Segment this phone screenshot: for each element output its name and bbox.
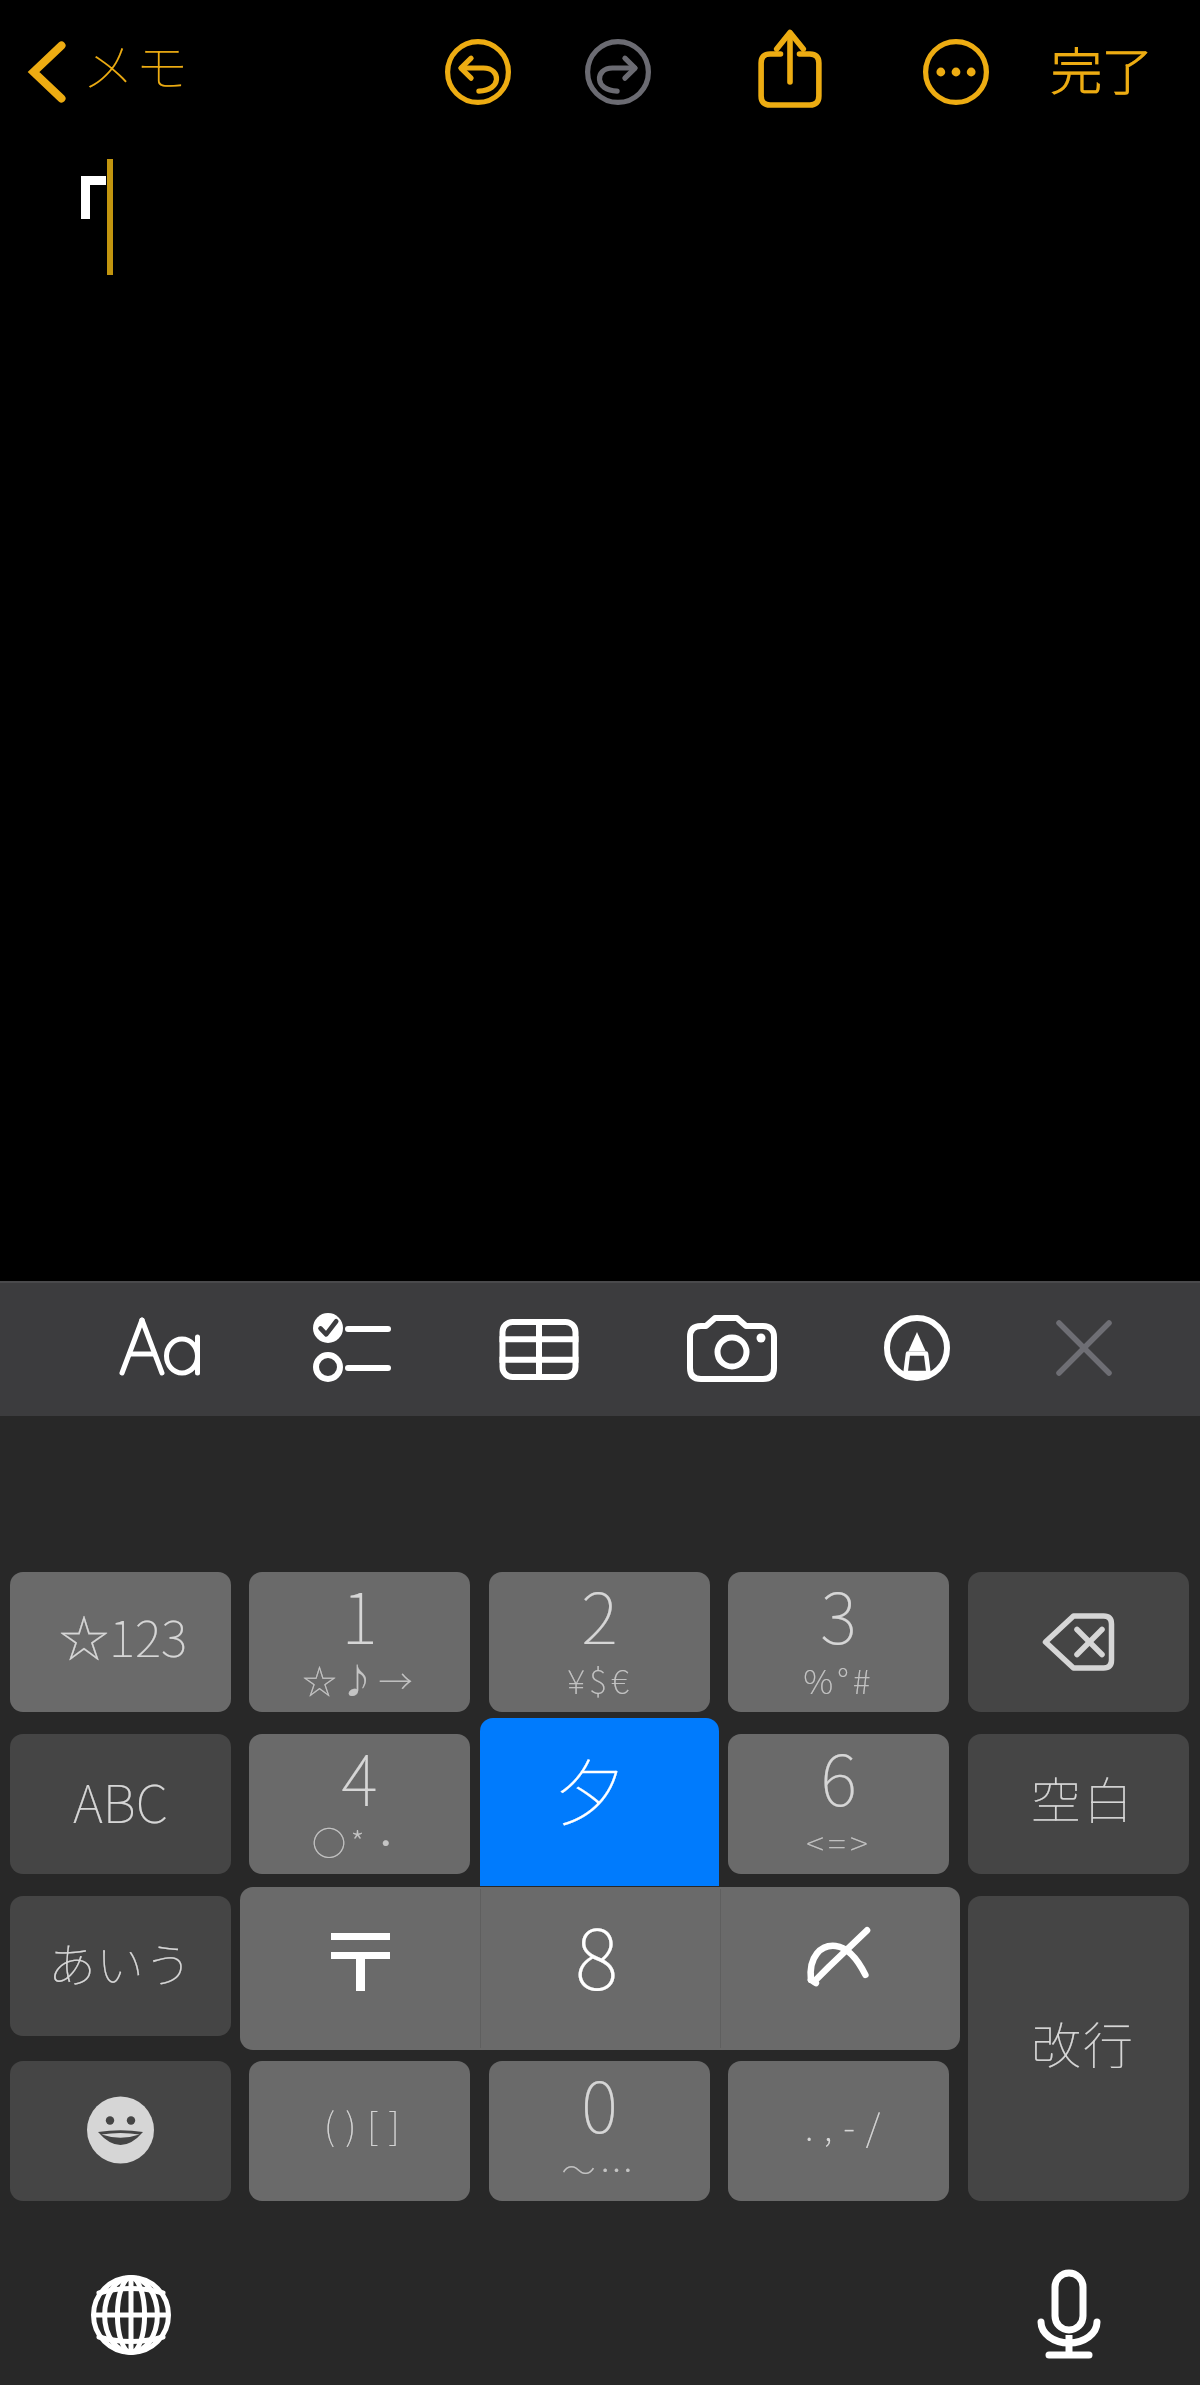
staticText: 1 [341,1563,378,1664]
button[interactable] [10,1896,231,2036]
button[interactable]: Change keyboard [90,2274,172,2356]
button[interactable]: Share [752,22,828,122]
button[interactable]: Close [1029,1293,1139,1403]
button[interactable]: Checklist [295,1293,405,1403]
staticText: 3 [820,1563,857,1664]
staticText: ～… [561,2144,638,2193]
staticText: 完了 [1051,31,1154,105]
button[interactable] [249,2061,470,2201]
button[interactable]: Text format [106,1292,216,1402]
button[interactable] [249,1734,470,1874]
button[interactable] [10,1572,231,1712]
staticText: 4 [341,1725,378,1826]
button[interactable] [720,1887,960,2050]
staticText: .,-/ [805,2099,891,2151]
staticText: <=> [806,1817,872,1866]
button[interactable]: メモ [14,24,194,120]
button[interactable] [240,1887,480,2050]
staticText: %°# [803,1655,875,1704]
button[interactable] [968,1734,1189,1874]
button[interactable] [728,1572,949,1712]
button[interactable]: Emoji [10,2061,231,2201]
button[interactable] [728,2061,949,2201]
button[interactable] [489,2061,710,2201]
staticText: ☆♪→ [302,1655,417,1704]
button[interactable]: 完了 [1020,20,1180,124]
staticText: 0 [581,2052,618,2153]
button[interactable] [968,1896,1189,2201]
staticText: 夕 [553,1735,626,1841]
staticText: 8 [575,1894,619,2014]
button[interactable]: Table [484,1294,594,1404]
button[interactable] [10,1734,231,1874]
button[interactable]: Redo [572,26,664,118]
staticText: ☆123 [59,1599,188,1671]
staticText: あいう [48,1927,193,1997]
button[interactable]: Camera [677,1295,787,1405]
button[interactable]: More [910,26,1002,118]
staticText: ¥$€ [567,1655,633,1704]
button[interactable] [480,1718,719,1886]
button[interactable]: Undo [432,26,524,118]
button[interactable] [728,1734,949,1874]
button[interactable] [489,1572,710,1712]
staticText: ()[] [324,2098,411,2150]
staticText: メモ [82,26,188,103]
staticText: 改行 [1031,2006,1135,2078]
button[interactable] [249,1572,470,1712]
button[interactable] [480,1887,720,2050]
staticText: 6 [820,1725,857,1826]
button[interactable]: Markup [862,1293,972,1403]
staticText: 空白 [1031,1761,1135,1833]
staticText: 2 [581,1563,618,1664]
staticText: ABC [73,1763,168,1838]
button[interactable]: Dictation [1028,2272,1110,2354]
button[interactable]: Delete [968,1572,1189,1712]
staticText: ○*・ [312,1817,407,1866]
